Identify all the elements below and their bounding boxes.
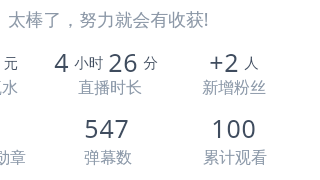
button[interactable]: 3 <box>0 111 92 145</box>
staticText: 3 <box>0 111 92 145</box>
button[interactable]: 勋章 <box>0 148 120 168</box>
button[interactable]: 547 <box>0 111 217 145</box>
button[interactable]: 0.00 元 <box>0 45 92 79</box>
staticText: 100 <box>124 111 320 145</box>
staticText: 547 <box>0 111 217 145</box>
staticText: 0.00 元 <box>0 45 92 79</box>
button[interactable]: +2 人 <box>124 45 320 79</box>
staticText: 弹幕数 <box>0 148 218 168</box>
button[interactable]: 弹幕数 <box>0 148 218 168</box>
button[interactable]: 新增粉丝 <box>124 78 320 98</box>
staticText: 勋章 <box>0 148 120 168</box>
staticText: 流水 <box>0 78 112 98</box>
staticText: 累计观看 <box>125 148 320 168</box>
staticText: 新增粉丝 <box>124 78 320 98</box>
staticText: 4 小时 26 分 <box>0 45 216 79</box>
button[interactable]: 流水 <box>0 78 112 98</box>
button[interactable]: 累计观看 <box>125 148 320 168</box>
button[interactable]: 4 小时 26 分 <box>0 45 216 79</box>
staticText: 直播时长 <box>0 78 220 98</box>
staticText: 太棒了，努力就会有收获! <box>8 7 209 31</box>
button[interactable]: 直播时长 <box>0 78 220 98</box>
button[interactable]: 100 <box>124 111 320 145</box>
staticText: +2 人 <box>124 45 320 79</box>
